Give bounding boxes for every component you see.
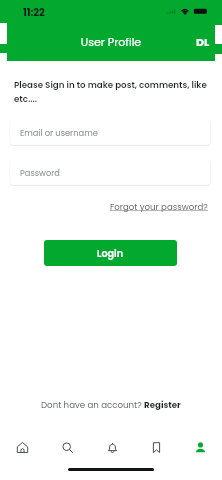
button[interactable]: Search (45, 433, 90, 461)
button[interactable]: Dont have an account? Register (41, 399, 181, 411)
staticText: Password (20, 167, 60, 179)
staticText: DL (196, 34, 210, 49)
button[interactable]: Login (44, 240, 177, 266)
button[interactable]: Notifications (90, 433, 134, 461)
button[interactable]: Home (0, 433, 45, 461)
button[interactable]: Profile (178, 433, 222, 461)
button[interactable]: Email or username (10, 120, 210, 145)
button[interactable]: Bookmarks (134, 433, 178, 461)
staticText: Login (97, 247, 124, 260)
staticText: 11:22 (23, 5, 45, 19)
button[interactable]: Forgot your password? (110, 201, 208, 213)
button[interactable]: DL logo (193, 32, 213, 50)
staticText: Please Sign in to make post, comments, l… (14, 79, 210, 106)
staticText: Email or username (20, 127, 98, 139)
button[interactable]: Password (10, 160, 210, 185)
staticText: User Profile (0, 34, 222, 49)
